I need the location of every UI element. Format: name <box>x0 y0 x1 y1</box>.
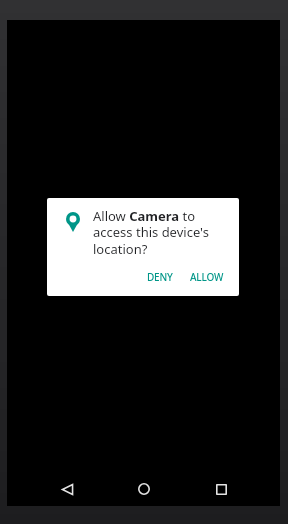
staticText: Allow Camera to access this device's loc… <box>93 207 213 258</box>
button[interactable]: ALLOW <box>183 265 231 289</box>
staticText: ALLOW <box>190 270 224 284</box>
staticText: DENY <box>147 270 173 284</box>
button[interactable]: Recents <box>203 472 239 506</box>
button[interactable]: Home <box>126 472 162 506</box>
button[interactable]: DENY <box>140 265 180 289</box>
button[interactable]: Back <box>49 472 85 506</box>
other: Location <box>66 212 80 232</box>
